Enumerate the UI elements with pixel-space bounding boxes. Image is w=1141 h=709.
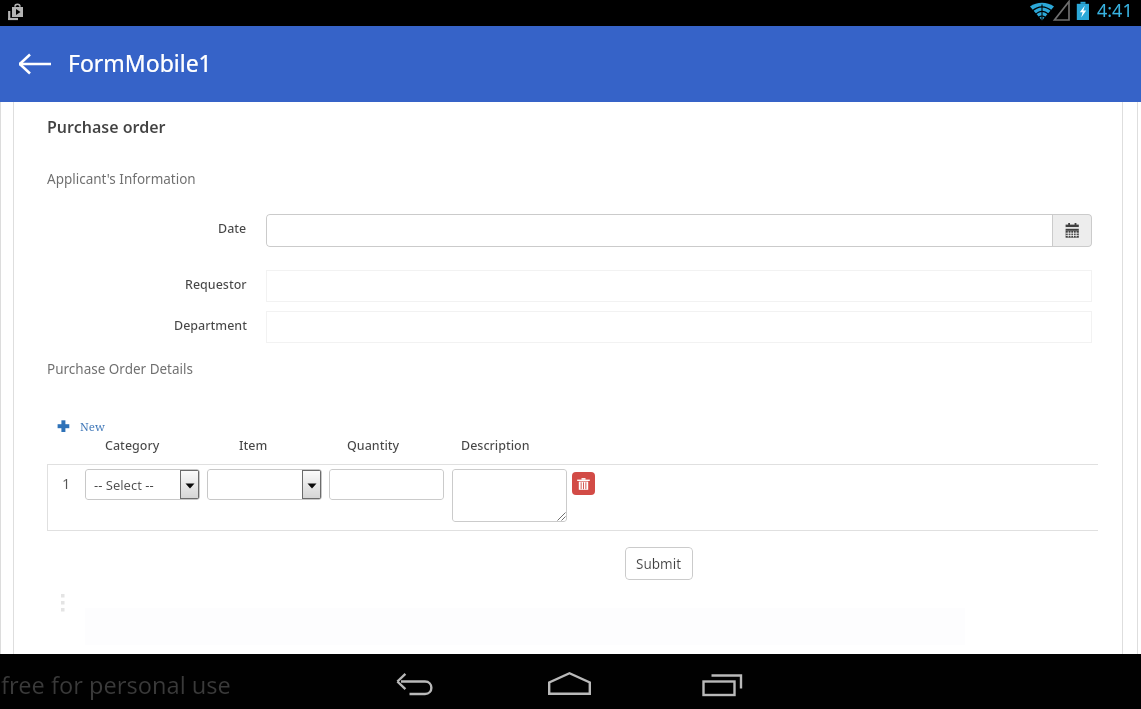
button[interactable] bbox=[329, 469, 444, 500]
staticText: FormMobile1 bbox=[68, 47, 212, 78]
staticText: Item bbox=[239, 437, 268, 454]
button[interactable]: Back bbox=[366, 654, 466, 709]
button[interactable]: Submit bbox=[625, 547, 693, 580]
staticText: Department bbox=[174, 317, 247, 334]
button[interactable] bbox=[266, 270, 1092, 302]
button[interactable] bbox=[266, 214, 1053, 247]
button[interactable] bbox=[207, 469, 322, 500]
button[interactable]: New bbox=[53, 416, 109, 437]
staticText: Purchase Order Details bbox=[47, 360, 194, 378]
staticText: Applicant's Information bbox=[47, 170, 196, 188]
staticText: Description bbox=[461, 437, 530, 454]
button[interactable]: Recent apps bbox=[672, 654, 772, 709]
button[interactable]: -- Select -- bbox=[85, 469, 200, 500]
staticText: 1 bbox=[62, 473, 71, 493]
staticText: Quantity bbox=[347, 437, 400, 454]
staticText: Requestor bbox=[185, 276, 247, 293]
staticText: Date bbox=[218, 220, 247, 237]
button[interactable]: Delete row bbox=[572, 472, 595, 495]
staticText: Category bbox=[105, 437, 160, 454]
button[interactable] bbox=[266, 311, 1092, 343]
staticText: -- Select -- bbox=[94, 476, 154, 494]
staticText: Purchase order bbox=[47, 116, 166, 138]
staticText: Submit bbox=[636, 555, 682, 573]
staticText: free for personal use bbox=[1, 669, 231, 701]
button[interactable] bbox=[452, 469, 567, 522]
button[interactable]: Pick date bbox=[1052, 214, 1092, 247]
staticText: New bbox=[80, 419, 105, 435]
button[interactable]: Back bbox=[12, 41, 58, 87]
button[interactable]: Home bbox=[519, 654, 619, 709]
staticText: 4:41 bbox=[1097, 0, 1133, 23]
